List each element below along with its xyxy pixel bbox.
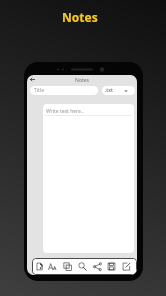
button[interactable]: Write text here.. (43, 104, 134, 253)
staticText: Write text here.. (46, 108, 84, 115)
button[interactable]: Text size (47, 261, 58, 272)
button[interactable]: Copy (62, 261, 73, 272)
button[interactable]: New note (34, 261, 45, 272)
button[interactable]: Search (77, 261, 88, 272)
staticText: Notes (27, 77, 137, 84)
button[interactable]: .txt (102, 86, 135, 95)
button[interactable]: Edit (121, 261, 132, 272)
staticText: .txt (105, 87, 113, 94)
staticText: Notes (62, 9, 98, 25)
button[interactable]: Save (106, 261, 117, 272)
staticText: Title (34, 87, 44, 94)
button[interactable]: Back (28, 75, 37, 84)
button[interactable]: Share (92, 261, 103, 272)
button[interactable]: Title (30, 86, 98, 95)
